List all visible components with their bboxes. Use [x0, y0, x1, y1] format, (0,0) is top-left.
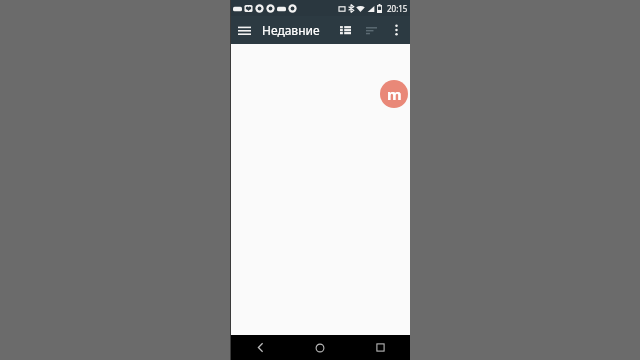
button[interactable]: Change view [332, 17, 358, 43]
button[interactable]: Home [290, 335, 350, 360]
staticText: Недавние [262, 22, 320, 38]
button[interactable]: Open navigation drawer [230, 16, 258, 44]
button[interactable]: Sort [358, 17, 384, 43]
button[interactable]: More options [384, 18, 408, 42]
staticText: m [387, 84, 402, 104]
button[interactable]: Recent apps [350, 335, 410, 360]
staticText: 20:15 [387, 3, 408, 14]
button[interactable]: Back [230, 335, 290, 360]
